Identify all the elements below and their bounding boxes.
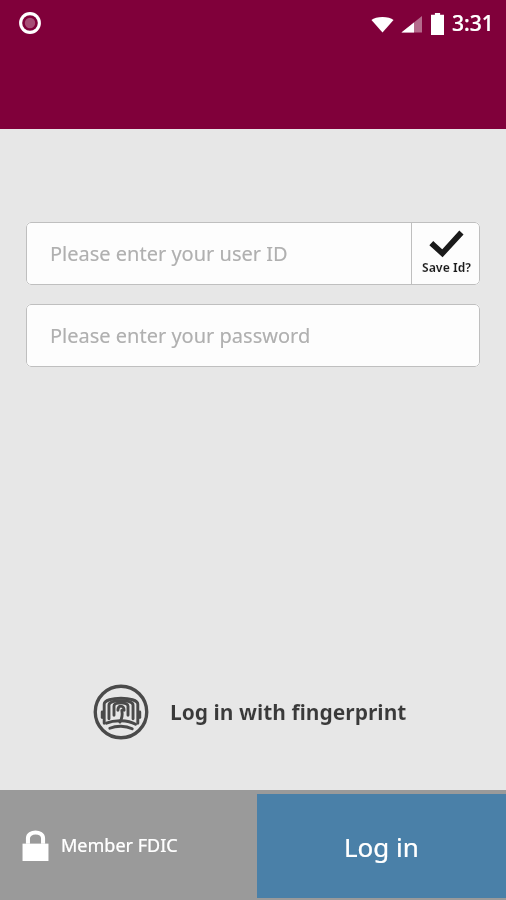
button[interactable]: Log in	[257, 794, 506, 898]
staticText: 3:31	[452, 9, 494, 38]
button[interactable]: Member FDIC	[22, 830, 178, 861]
staticText: Log in	[344, 829, 419, 864]
staticText: Save Id?	[422, 259, 471, 275]
button[interactable]: Please enter your password	[26, 304, 480, 367]
staticText: Please enter your password	[50, 322, 311, 349]
staticText: Log in with fingerprint	[170, 698, 407, 727]
other: Recording indicator	[17, 10, 43, 36]
staticText: Member FDIC	[61, 833, 178, 858]
button[interactable]: Please enter your user ID	[26, 222, 411, 285]
button[interactable]: Save Id?	[412, 222, 480, 285]
button[interactable]: Log in with fingerprint	[60, 684, 446, 740]
staticText: Please enter your user ID	[50, 240, 288, 267]
